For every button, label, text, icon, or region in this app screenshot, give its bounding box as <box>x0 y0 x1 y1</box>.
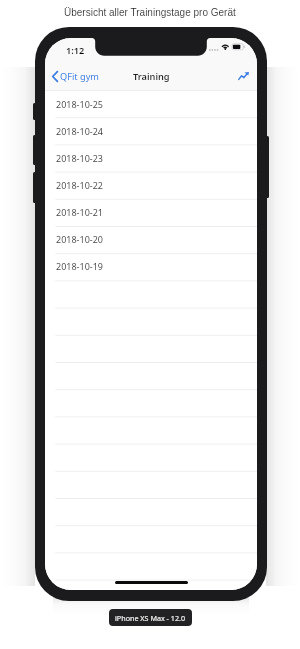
button[interactable]: 2018-10-19 <box>45 252 257 279</box>
staticText: 2018-10-25 <box>56 98 103 110</box>
staticText: 2018-10-22 <box>56 179 103 191</box>
button[interactable]: 2018-10-23 <box>45 144 257 171</box>
staticText: Übersicht aller Trainingstage pro Gerät <box>64 7 236 18</box>
button[interactable]: 2018-10-25 <box>45 90 257 117</box>
staticText: 2018-10-24 <box>56 125 103 137</box>
button[interactable]: 2018-10-24 <box>45 117 257 144</box>
button[interactable]: QFit gym <box>45 65 105 88</box>
button[interactable]: 2018-10-20 <box>45 225 257 252</box>
staticText: 2018-10-19 <box>56 260 103 272</box>
staticText: 1:12 <box>66 44 85 57</box>
button[interactable]: 2018-10-21 <box>45 198 257 225</box>
staticText: Training <box>133 70 170 83</box>
staticText: iPhone XS Max - 12.0 <box>115 613 186 623</box>
staticText: 2018-10-23 <box>56 152 103 164</box>
button[interactable]: 2018-10-22 <box>45 171 257 198</box>
staticText: 2018-10-20 <box>56 233 103 245</box>
staticText: 2018-10-21 <box>56 206 103 218</box>
staticText: QFit gym <box>60 70 99 83</box>
button[interactable]: Statistics <box>230 66 257 86</box>
